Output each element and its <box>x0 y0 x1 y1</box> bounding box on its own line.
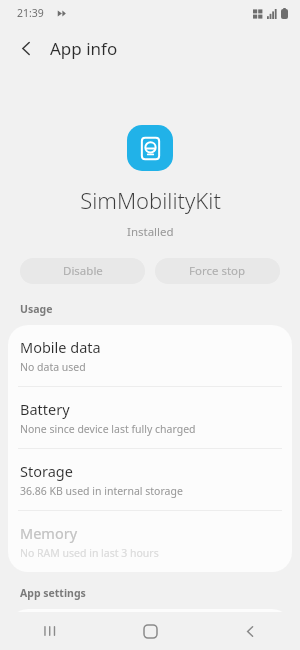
staticText: None since device last fully charged <box>20 422 196 436</box>
button[interactable]: Home <box>100 612 200 650</box>
staticText: SimMobilityKit <box>80 185 221 215</box>
staticText: 36.86 KB used in internal storage <box>20 484 183 498</box>
staticText: 21:39 <box>17 6 44 20</box>
button[interactable]: Storage <box>8 449 292 510</box>
button[interactable]: Notifications <box>8 609 292 650</box>
staticText: Memory <box>20 523 78 543</box>
staticText: No RAM used in last 3 hours <box>20 546 159 560</box>
button[interactable]: Recents <box>0 612 100 650</box>
button[interactable]: Back <box>200 612 300 650</box>
staticText: Storage <box>20 461 73 481</box>
staticText: Usage <box>20 302 300 316</box>
button[interactable]: Back <box>8 30 44 66</box>
staticText: Force stop <box>189 263 246 279</box>
button[interactable]: Disable <box>20 258 145 284</box>
button[interactable]: Force stop <box>155 258 280 284</box>
staticText: Battery <box>20 399 70 419</box>
button[interactable]: Mobile data <box>8 325 292 386</box>
staticText: App settings <box>20 586 300 600</box>
staticText: App info <box>50 37 118 60</box>
staticText: Mobile data <box>20 337 101 357</box>
button[interactable]: Battery <box>8 387 292 448</box>
button[interactable]: Memory <box>8 511 292 572</box>
staticText: Installed <box>127 224 174 240</box>
staticText: No data used <box>20 360 86 374</box>
staticText: Disable <box>63 263 103 279</box>
staticText: Notifications <box>20 621 107 638</box>
